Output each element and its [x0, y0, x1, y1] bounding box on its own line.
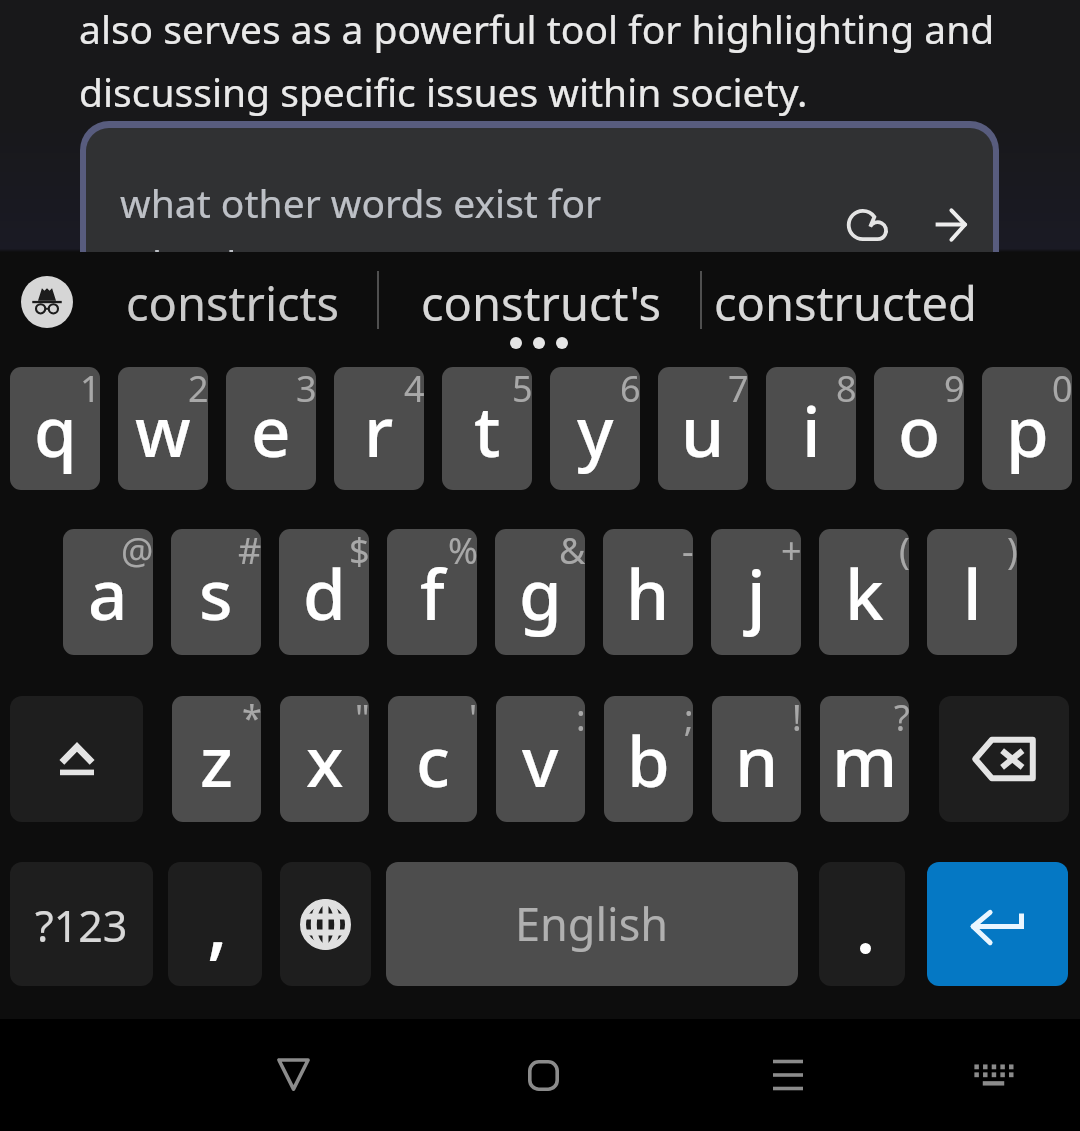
staticText: r — [364, 383, 394, 477]
staticText: x — [306, 713, 344, 807]
button[interactable]: e — [226, 367, 316, 490]
button[interactable]: English — [386, 862, 798, 986]
button[interactable]: Home — [483, 1019, 603, 1131]
staticText: 4 — [404, 367, 424, 413]
staticText: ? — [894, 696, 909, 742]
staticText: 9 — [944, 367, 964, 413]
staticText: b — [627, 713, 670, 807]
staticText: a local event — [120, 237, 348, 252]
staticText: 6 — [620, 367, 640, 413]
button[interactable]: r — [334, 367, 424, 490]
button[interactable]: o — [874, 367, 964, 490]
staticText: z — [200, 713, 233, 807]
staticText: c — [416, 713, 450, 807]
staticText: s — [199, 546, 233, 640]
staticText: d — [303, 546, 346, 640]
staticText: ' — [469, 696, 477, 742]
staticText: p — [1006, 383, 1049, 477]
button[interactable]: z — [172, 696, 261, 822]
button[interactable]: n — [712, 696, 801, 822]
button[interactable]: q — [10, 367, 100, 490]
staticText: 8 — [836, 367, 856, 413]
button[interactable]: ?123 — [10, 862, 153, 986]
staticText: # — [238, 529, 261, 575]
staticText: & — [559, 529, 585, 575]
staticText: a — [88, 546, 128, 640]
staticText: ?123 — [35, 896, 128, 955]
button[interactable]: constricts — [92, 252, 373, 352]
staticText: construct's — [421, 271, 662, 335]
button[interactable]: x — [280, 696, 369, 822]
button[interactable]: h — [603, 529, 693, 655]
staticText: h — [626, 546, 670, 640]
button[interactable]: l — [927, 529, 1017, 655]
staticText: , — [207, 870, 228, 974]
button[interactable]: Change keyboard language — [280, 862, 371, 986]
staticText: q — [34, 383, 77, 477]
staticText: n — [735, 713, 779, 807]
staticText: e — [251, 383, 291, 477]
button[interactable]: m — [820, 696, 909, 822]
staticText: $ — [349, 529, 369, 575]
staticText: g — [519, 546, 562, 640]
button[interactable]: u — [658, 367, 748, 490]
button[interactable]: Switch keyboard — [933, 1019, 1053, 1131]
staticText: : — [576, 696, 585, 742]
button[interactable]: Shift — [10, 696, 143, 822]
button[interactable]: Back — [233, 1019, 353, 1131]
staticText: constructed — [714, 271, 977, 335]
button[interactable]: constructed — [706, 252, 985, 352]
staticText: * — [242, 696, 261, 742]
button[interactable]: s — [171, 529, 261, 655]
staticText: also serves as a powerful tool for highl… — [79, 2, 995, 55]
staticText: 1 — [80, 367, 100, 413]
button[interactable]: w — [118, 367, 208, 490]
button[interactable]: Comma — [168, 862, 262, 986]
staticText: v — [522, 713, 559, 807]
button[interactable]: Cloud sync — [831, 189, 903, 252]
staticText: j — [747, 546, 766, 640]
staticText: 5 — [512, 367, 532, 413]
button[interactable]: j — [711, 529, 801, 655]
staticText: t — [474, 383, 501, 477]
button[interactable]: g — [495, 529, 585, 655]
button[interactable]: construct's — [381, 252, 702, 352]
staticText: @ — [121, 529, 153, 575]
staticText: English — [515, 893, 669, 954]
staticText: " — [355, 696, 369, 742]
button[interactable]: Period — [819, 862, 905, 986]
staticText: o — [898, 383, 941, 477]
staticText: y — [577, 383, 614, 477]
button[interactable]: b — [604, 696, 693, 822]
staticText: - — [682, 529, 693, 575]
staticText: % — [448, 529, 477, 575]
staticText: what other words exist for — [120, 176, 602, 229]
button[interactable]: Backspace — [939, 696, 1069, 822]
button[interactable]: what other words exist for — [86, 128, 993, 252]
button[interactable]: p — [982, 367, 1072, 490]
staticText: l — [963, 546, 982, 640]
staticText: f — [420, 546, 445, 640]
button[interactable]: i — [766, 367, 856, 490]
button[interactable]: f — [387, 529, 477, 655]
staticText: discussing specific issues within societ… — [79, 65, 808, 118]
button[interactable]: d — [279, 529, 369, 655]
staticText: ! — [792, 696, 801, 742]
staticText: u — [681, 383, 725, 477]
button[interactable]: Enter — [927, 862, 1068, 986]
staticText: + — [781, 529, 801, 575]
button[interactable]: Incognito mode — [21, 276, 73, 328]
button[interactable]: v — [496, 696, 585, 822]
button[interactable]: y — [550, 367, 640, 490]
button[interactable]: k — [819, 529, 909, 655]
button[interactable]: t — [442, 367, 532, 490]
staticText: 3 — [296, 367, 316, 413]
staticText: constricts — [126, 271, 340, 335]
staticText: k — [845, 546, 884, 640]
button[interactable]: c — [388, 696, 477, 822]
button[interactable]: Recent apps — [728, 1019, 848, 1131]
staticText: i — [802, 383, 821, 477]
button[interactable]: Send — [914, 189, 986, 252]
button[interactable]: a — [63, 529, 153, 655]
staticText: w — [135, 383, 191, 477]
